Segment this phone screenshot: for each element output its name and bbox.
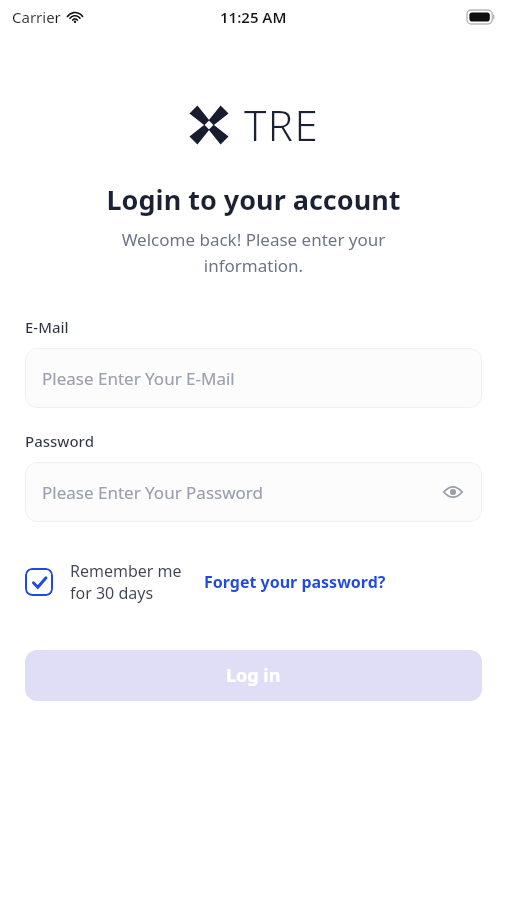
button[interactable]: Forget your password? [204,571,386,593]
staticText: E-Mail [25,317,69,337]
button[interactable]: Remember me for 30 days [25,560,182,604]
staticText: Welcome back! Please enter your informat… [40,228,467,277]
button[interactable]: Show password [438,477,468,507]
button[interactable]: Please Enter Your E-Mail [25,348,482,408]
staticText: Forget your password? [204,571,386,593]
button[interactable]: Log in [25,650,482,701]
staticText: Log in [226,663,281,688]
staticText: Remember me for 30 days [70,560,182,604]
staticText: Login to your account [0,181,507,218]
staticText: Password [25,431,94,451]
staticText: 11:25 AM [220,7,287,27]
staticText: Please Enter Your E-Mail [42,367,235,390]
button[interactable]: Please Enter Your Password [25,462,482,522]
staticText: Carrier [12,7,61,27]
staticText: Please Enter Your Password [42,481,263,504]
staticText: TRE [244,96,320,153]
